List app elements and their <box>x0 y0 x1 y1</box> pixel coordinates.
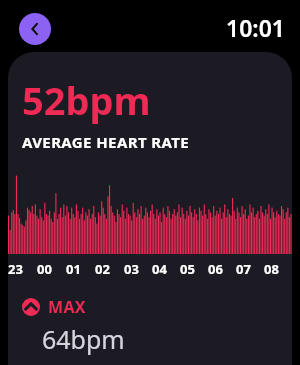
staticText: 02 <box>95 260 110 278</box>
staticText: MAX <box>48 296 86 318</box>
staticText: 64bpm <box>42 322 125 356</box>
staticText: 07 <box>236 260 251 278</box>
staticText: 10:01 <box>205 12 285 43</box>
staticText: 03 <box>124 260 139 278</box>
staticText: AVERAGE HEART RATE <box>22 132 190 152</box>
staticText: 05 <box>180 260 195 278</box>
staticText: 23 <box>8 260 23 278</box>
staticText: 04 <box>152 260 167 278</box>
staticText: 01 <box>66 260 81 278</box>
staticText: 08 <box>264 260 279 278</box>
staticText: 06 <box>208 260 223 278</box>
button[interactable]: Back <box>19 13 51 45</box>
staticText: 00 <box>37 260 52 278</box>
button[interactable]: 52bpm <box>8 52 292 365</box>
button[interactable]: MAX <box>8 296 292 318</box>
staticText: 52bpm <box>22 74 151 126</box>
